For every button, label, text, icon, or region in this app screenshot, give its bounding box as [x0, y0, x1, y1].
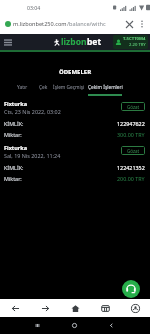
staticText: 122421352	[117, 164, 145, 171]
staticText: Gözat	[127, 148, 140, 154]
button[interactable]: Recent apps	[19, 317, 56, 334]
button[interactable]: Account	[120, 299, 150, 317]
button[interactable]: Back	[0, 299, 30, 317]
staticText: KİMLİK:	[4, 164, 24, 171]
staticText: /balance/withc	[67, 20, 106, 28]
button[interactable]: Back	[93, 317, 130, 334]
staticText: 300.00 TRY	[117, 131, 145, 138]
staticText: Çek	[39, 84, 48, 91]
staticText: Yatır	[17, 84, 28, 91]
button[interactable]: Fixturka	[0, 144, 150, 182]
staticText: Cts, 23 Nis 2022, 03:02	[4, 108, 61, 115]
staticText: KİMLİK:	[4, 120, 24, 127]
button[interactable]: Stop loading page	[123, 18, 135, 30]
staticText: m.lizbonbet250.com	[13, 20, 67, 28]
staticText: Gözat	[127, 104, 140, 110]
staticText: lizbon	[61, 36, 87, 48]
staticText: 200.00 TRY	[117, 175, 145, 182]
button[interactable]: Yatır	[17, 84, 28, 96]
staticText: Çekim İşlemleri	[88, 84, 123, 91]
staticText: 2.20 TRY	[129, 42, 146, 48]
button[interactable]: More options	[136, 18, 148, 30]
button[interactable]: Home	[56, 317, 93, 334]
button[interactable]: Gözat	[121, 146, 145, 155]
button[interactable]: Home	[60, 299, 90, 317]
button[interactable]: T-5CTT0M4	[113, 35, 148, 49]
button[interactable]: Çekim İşlemleri	[88, 84, 123, 96]
staticText: Fixturka	[4, 144, 27, 151]
staticText: 122947622	[117, 120, 145, 127]
button[interactable]: Open menu	[2, 36, 14, 48]
button[interactable]: Fixturka	[0, 100, 150, 138]
button[interactable]: Live support chat	[122, 280, 140, 298]
staticText: Sal, 19 Nis 2022, 11:24	[4, 152, 61, 159]
staticText: Miktar:	[4, 131, 22, 138]
staticText: Fixturka	[4, 100, 27, 107]
staticText: bet	[87, 36, 102, 48]
button[interactable]: İşlem Geçmişi	[53, 84, 85, 96]
button[interactable]: Çek	[39, 84, 48, 96]
button[interactable]: Gözat	[121, 102, 145, 111]
staticText: T-5CTT0M4	[123, 36, 146, 42]
staticText: ÖDEMELER	[0, 68, 150, 76]
staticText: 03:04	[27, 4, 41, 11]
button[interactable]: Forward	[30, 299, 60, 317]
staticText: İşlem Geçmişi	[53, 84, 85, 91]
staticText: Miktar:	[4, 175, 22, 182]
button[interactable]: Tabs	[90, 299, 120, 317]
